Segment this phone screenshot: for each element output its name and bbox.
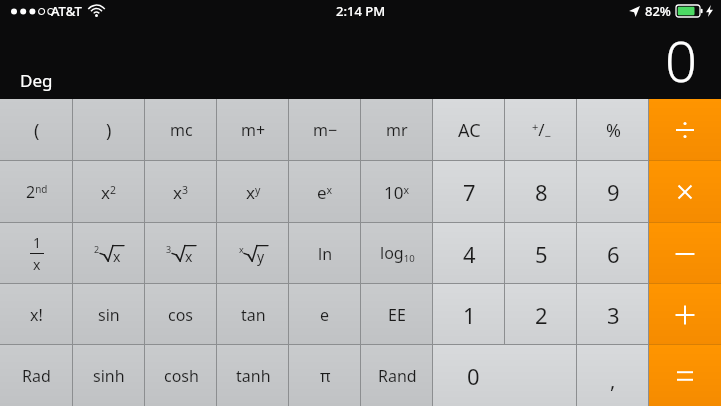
- button[interactable]: e: [289, 284, 361, 345]
- button[interactable]: radians: [0, 345, 73, 406]
- button[interactable]: 7: [433, 161, 505, 223]
- staticText: 82%: [645, 2, 671, 20]
- button[interactable]: log base ten: [361, 223, 433, 284]
- staticText: log10: [380, 242, 415, 265]
- staticText: 1: [463, 300, 476, 330]
- button[interactable]: divide: [649, 99, 721, 161]
- staticText: %: [606, 118, 621, 143]
- staticText: +/−: [532, 118, 551, 143]
- staticText: e: [320, 304, 330, 326]
- button[interactable]: x squared: [73, 161, 145, 223]
- staticText: 5: [535, 239, 548, 269]
- button[interactable]: 3: [577, 284, 649, 345]
- staticText: 3: [607, 300, 620, 330]
- button[interactable]: tanh: [217, 345, 289, 406]
- button[interactable]: memory subtract: [289, 99, 361, 161]
- button[interactable]: pi: [289, 345, 361, 406]
- staticText: EE: [388, 304, 406, 326]
- button[interactable]: subtract: [649, 223, 721, 284]
- staticText: AC: [458, 118, 481, 143]
- staticText: ex: [317, 181, 333, 204]
- staticText: 6: [607, 239, 620, 269]
- staticText: ,: [610, 367, 616, 394]
- button[interactable]: equals: [649, 345, 721, 406]
- staticText: m+: [241, 119, 266, 141]
- button[interactable]: plus minus: [505, 99, 577, 161]
- staticText: sinh: [93, 365, 125, 387]
- staticText: AT&T: [51, 2, 82, 20]
- staticText: Rand: [378, 365, 417, 387]
- button[interactable]: decimal separator: [577, 345, 649, 406]
- staticText: 2: [94, 243, 100, 255]
- staticText: (: [34, 118, 40, 143]
- staticText: 9: [607, 177, 620, 207]
- button[interactable]: add: [649, 284, 721, 345]
- button[interactable]: tan: [217, 284, 289, 345]
- button[interactable]: percent: [577, 99, 649, 161]
- button[interactable]: x to the y: [217, 161, 289, 223]
- button[interactable]: 2: [505, 284, 577, 345]
- staticText: 10x: [384, 181, 410, 204]
- staticText: sin: [98, 304, 120, 326]
- staticText: 3: [166, 243, 172, 255]
- staticText: cos: [168, 304, 194, 326]
- button[interactable]: memory add: [217, 99, 289, 161]
- button[interactable]: 1: [433, 284, 505, 345]
- staticText: tan: [241, 304, 266, 326]
- button[interactable]: x cubed: [145, 161, 217, 223]
- button[interactable]: one over x: [0, 223, 73, 284]
- button[interactable]: factorial: [0, 284, 73, 345]
- staticText: π: [320, 365, 331, 387]
- staticText: x2: [101, 181, 117, 204]
- button[interactable]: 5: [505, 223, 577, 284]
- button[interactable]: EE: [361, 284, 433, 345]
- button[interactable]: natural log: [289, 223, 361, 284]
- button[interactable]: multiply: [649, 161, 721, 223]
- staticText: cosh: [164, 365, 199, 387]
- button[interactable]: open paren: [0, 99, 73, 161]
- button[interactable]: memory recall: [361, 99, 433, 161]
- staticText: tanh: [236, 365, 271, 387]
- staticText: 2:14 PM: [336, 2, 386, 20]
- staticText: x: [33, 255, 41, 274]
- staticText: 0: [665, 22, 697, 98]
- button[interactable]: cube root: [145, 223, 217, 284]
- staticText: Deg: [20, 69, 53, 92]
- staticText: mc: [170, 119, 193, 141]
- button[interactable]: e to the x: [289, 161, 361, 223]
- staticText: mr: [386, 119, 408, 141]
- button[interactable]: 4: [433, 223, 505, 284]
- staticText: x: [239, 243, 244, 255]
- staticText: ): [106, 118, 112, 143]
- staticText: 8: [535, 177, 548, 207]
- button[interactable]: sin: [73, 284, 145, 345]
- button[interactable]: memory clear: [145, 99, 217, 161]
- staticText: x: [113, 247, 121, 266]
- staticText: 1: [33, 233, 42, 252]
- button[interactable]: 9: [577, 161, 649, 223]
- staticText: x3: [173, 181, 189, 204]
- button[interactable]: cos: [145, 284, 217, 345]
- staticText: ln: [318, 243, 333, 265]
- button[interactable]: ten to the x: [361, 161, 433, 223]
- button[interactable]: AC: [433, 99, 505, 161]
- button[interactable]: x root of y: [217, 223, 289, 284]
- staticText: xy: [246, 181, 261, 204]
- button[interactable]: sinh: [73, 345, 145, 406]
- button[interactable]: 6: [577, 223, 649, 284]
- staticText: x!: [30, 304, 43, 326]
- button[interactable]: cosh: [145, 345, 217, 406]
- staticText: Rad: [22, 365, 51, 387]
- staticText: 2: [535, 300, 548, 330]
- button[interactable]: 0: [433, 345, 577, 406]
- button[interactable]: square root: [73, 223, 145, 284]
- button[interactable]: close paren: [73, 99, 145, 161]
- staticText: 0: [467, 361, 480, 391]
- staticText: y: [257, 247, 265, 266]
- button[interactable]: second: [0, 161, 73, 223]
- button[interactable]: random: [361, 345, 433, 406]
- button[interactable]: 8: [505, 161, 577, 223]
- staticText: x: [185, 247, 193, 266]
- staticText: 7: [463, 177, 476, 207]
- staticText: 2nd: [26, 181, 48, 203]
